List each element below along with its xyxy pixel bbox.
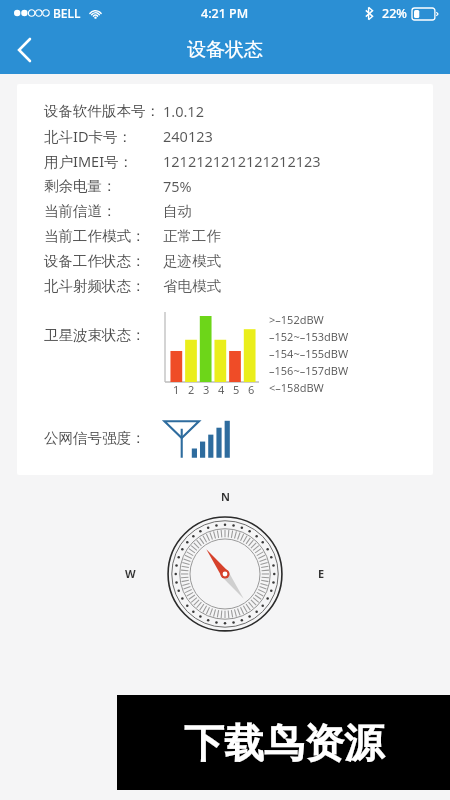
staticText: 剩余电量： bbox=[44, 177, 117, 195]
staticText: 1 bbox=[173, 382, 180, 397]
staticText: 下载鸟资源 bbox=[184, 718, 384, 768]
staticText: 自动 bbox=[163, 202, 192, 220]
staticText: 1212121212121212123 bbox=[163, 151, 321, 171]
staticText: 当前工作模式： bbox=[44, 227, 146, 245]
staticText: 2 bbox=[188, 382, 195, 397]
staticText: 省电模式 bbox=[163, 277, 221, 295]
staticText: 足迹模式 bbox=[163, 252, 221, 270]
staticText: <–158dBW bbox=[269, 380, 324, 397]
staticText: 公网信号强度： bbox=[44, 429, 146, 447]
staticText: 用户IMEI号： bbox=[44, 151, 134, 171]
staticText: 22% bbox=[382, 5, 407, 22]
staticText: 3 bbox=[203, 382, 210, 397]
staticText: 1.0.12 bbox=[163, 101, 204, 121]
staticText: >–152dBW bbox=[269, 312, 324, 329]
staticText: 设备软件版本号： bbox=[44, 102, 160, 120]
staticText: 设备状态 bbox=[187, 38, 263, 62]
staticText: 正常工作 bbox=[163, 227, 221, 245]
staticText: 4:21 PM bbox=[201, 5, 249, 22]
staticText: 6 bbox=[248, 382, 255, 397]
staticText: 75% bbox=[163, 176, 192, 196]
staticText: 设备工作状态： bbox=[44, 252, 146, 270]
staticText: 北斗ID卡号： bbox=[44, 126, 133, 146]
staticText: 240123 bbox=[163, 126, 213, 146]
staticText: 卫星波束状态： bbox=[44, 326, 146, 344]
staticText: –152~–153dBW bbox=[269, 329, 349, 346]
staticText: W bbox=[125, 566, 136, 581]
staticText: 5 bbox=[233, 382, 240, 397]
staticText: BELL bbox=[53, 5, 81, 21]
staticText: 北斗射频状态： bbox=[44, 277, 146, 295]
staticText: –156~–157dBW bbox=[269, 363, 349, 380]
button[interactable]: Back bbox=[0, 26, 48, 74]
staticText: 4 bbox=[218, 382, 225, 397]
staticText: E bbox=[318, 566, 325, 581]
staticText: –154~–155dBW bbox=[269, 346, 349, 363]
staticText: N bbox=[221, 489, 230, 504]
staticText: 当前信道： bbox=[44, 202, 117, 220]
